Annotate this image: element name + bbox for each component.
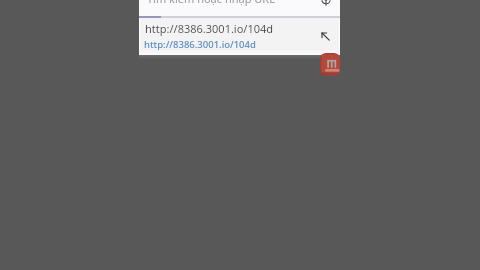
staticText: http://8386.3001.io/104d [144, 38, 256, 51]
button[interactable]: Voice search [319, 0, 333, 8]
staticText: http://8386.3001.io/104d [145, 21, 274, 36]
button[interactable]: http://8386.3001.io/104d [139, 38, 340, 55]
button[interactable]: http://8386.3001.io/104d [139, 18, 340, 38]
staticText: Tìm kiếm hoặc nhập URL [147, 0, 275, 6]
other: Channel logo [320, 53, 340, 76]
button[interactable]: Tìm kiếm hoặc nhập URL [139, 0, 340, 17]
button[interactable]: Use this suggestion [320, 31, 330, 41]
